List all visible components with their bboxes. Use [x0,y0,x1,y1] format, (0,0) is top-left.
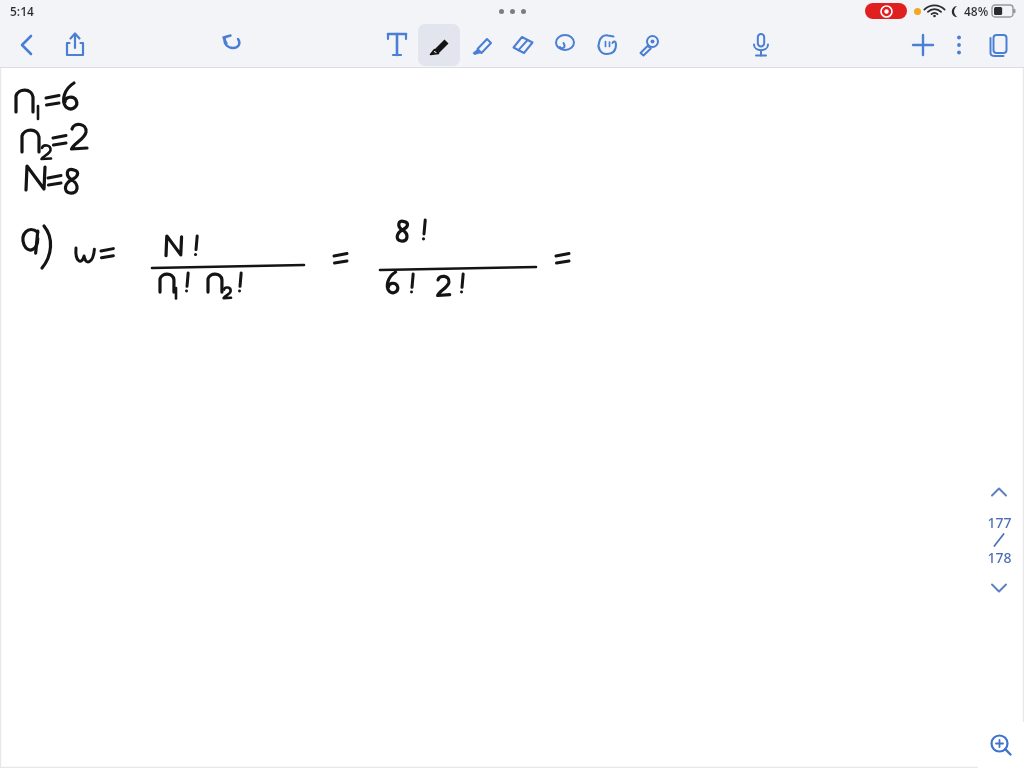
button[interactable]: Record audio [740,24,782,66]
button[interactable]: Highlighter [460,24,502,66]
button[interactable]: Share [54,24,96,66]
button[interactable]: 177 [986,513,1012,567]
button[interactable]: Eraser [502,24,544,66]
button[interactable]: Pen tool [418,24,460,66]
button[interactable]: Lasso select [544,24,586,66]
staticText: 178 [987,548,1012,567]
button[interactable]: Next page [982,571,1016,605]
button[interactable]: Zoom in [978,722,1024,768]
staticText: 5:14 [10,3,34,19]
button[interactable]: Laser pointer [628,24,670,66]
button[interactable]: Previous page [982,475,1016,509]
button[interactable]: Add [902,24,944,66]
staticText: 48% [964,3,989,19]
button[interactable]: Undo [211,24,253,66]
button[interactable]: Text tool [376,24,418,66]
button[interactable]: Hand tool [586,24,628,66]
button[interactable]: Back [6,24,48,66]
button[interactable]: More options [944,30,974,60]
button[interactable]: Pages [978,24,1020,66]
staticText: 177 [987,513,1012,532]
